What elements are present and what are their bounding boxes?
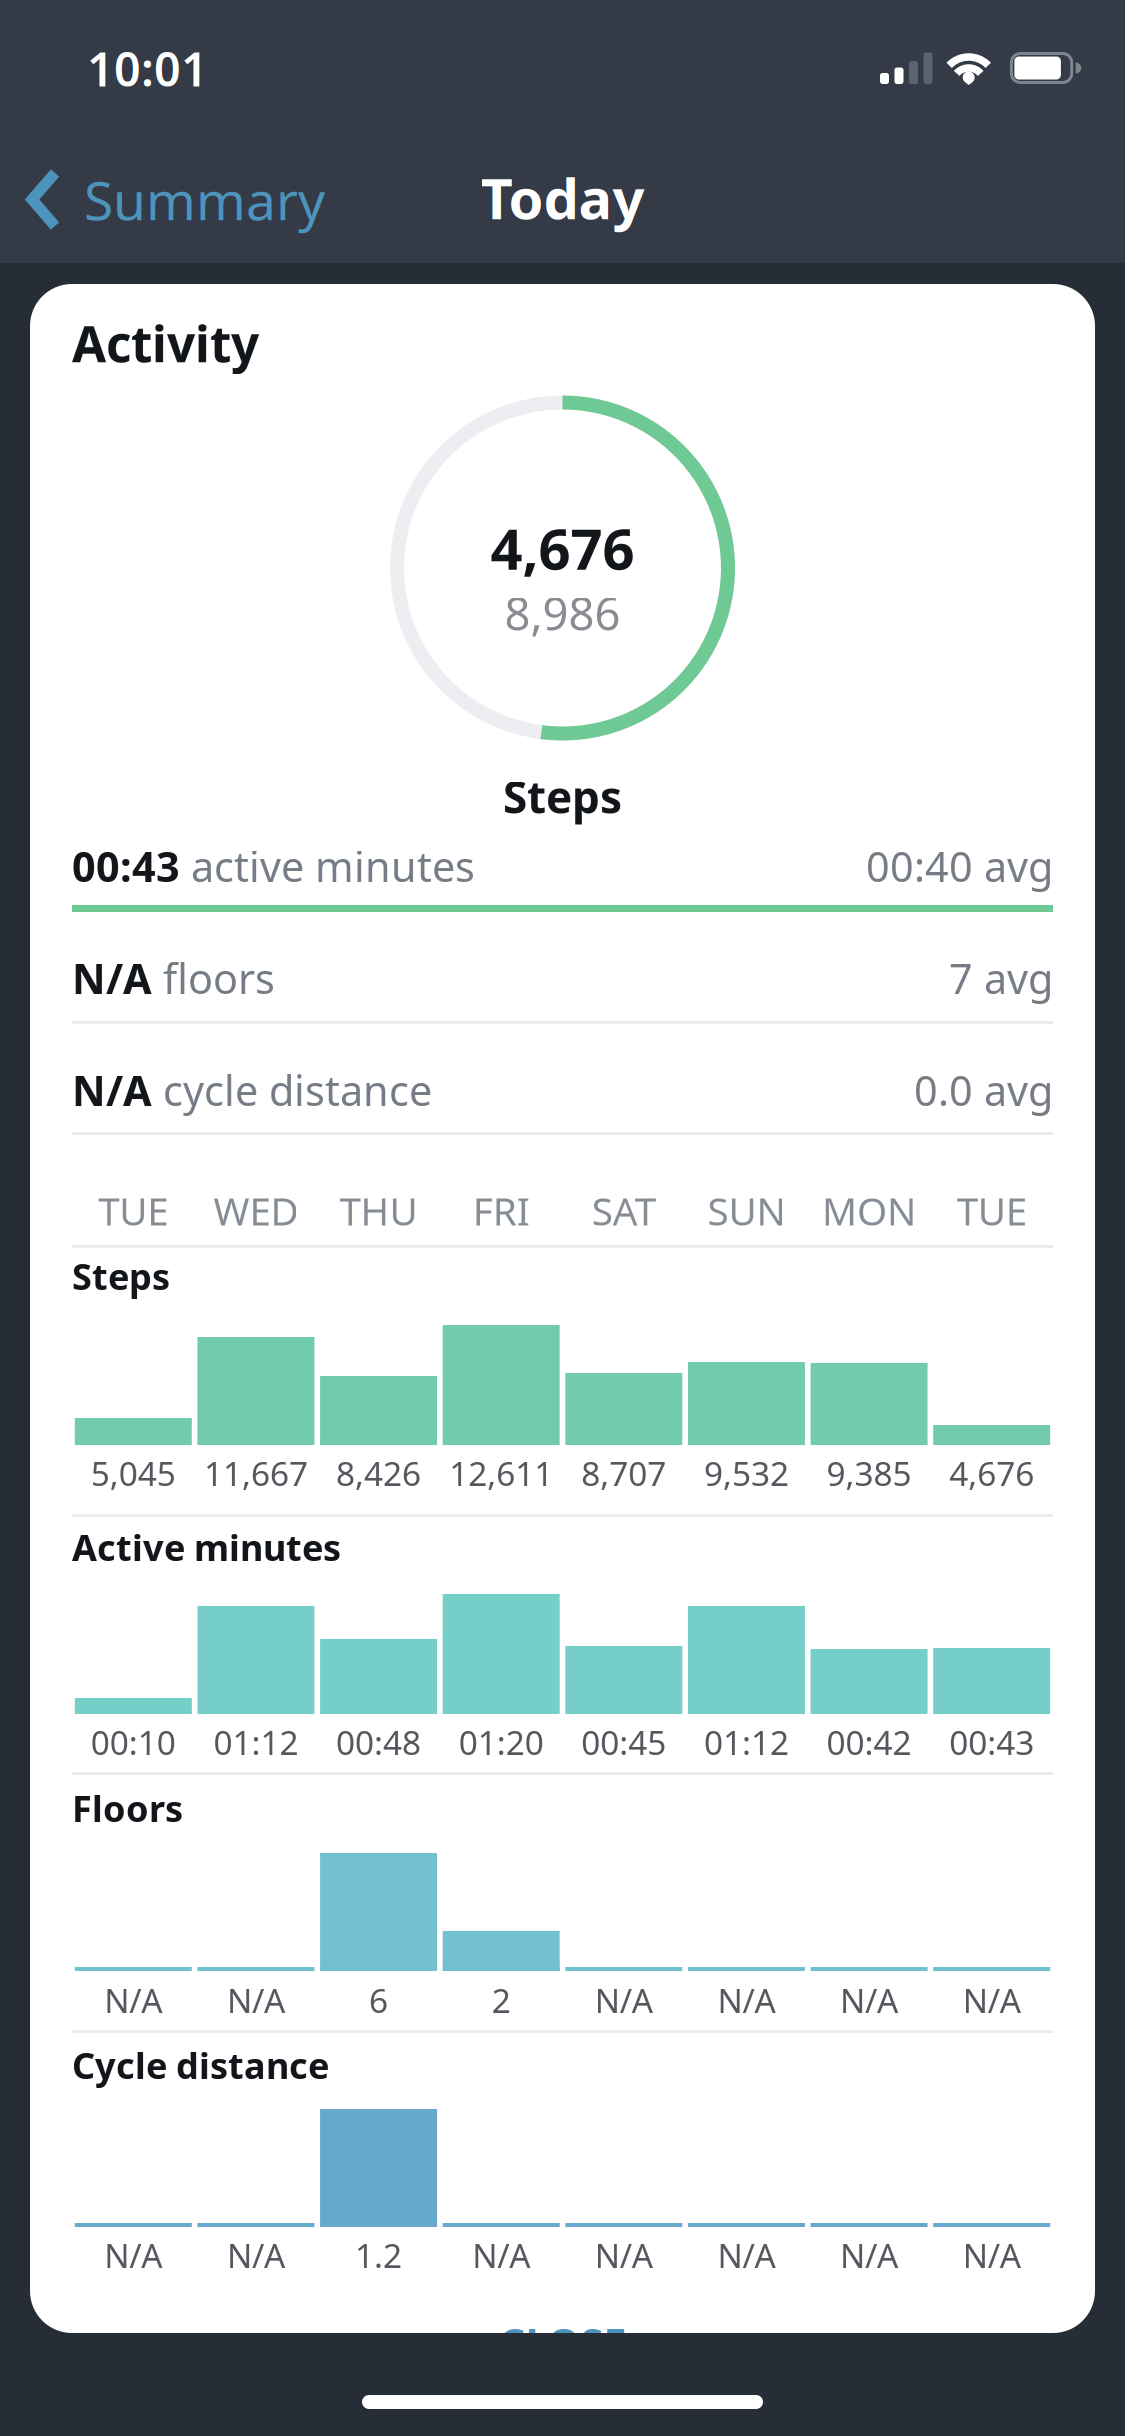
staticText: N/A xyxy=(104,2233,162,2277)
staticText: 01:20 xyxy=(459,1720,544,1764)
staticText: Steps xyxy=(503,767,622,826)
staticText: N/A xyxy=(72,1063,152,1117)
staticText: 8,707 xyxy=(581,1451,666,1495)
staticText: 8,986 xyxy=(504,583,620,643)
staticText: 8,426 xyxy=(336,1451,421,1495)
staticText: 00:45 xyxy=(581,1720,666,1764)
staticText: Cycle distance xyxy=(72,2041,329,2089)
staticText: 00:10 xyxy=(91,1720,176,1764)
staticText: N/A xyxy=(840,2233,898,2277)
staticText: Summary xyxy=(84,164,325,235)
staticText: Steps xyxy=(72,1252,170,1300)
staticText: 00:42 xyxy=(827,1720,912,1764)
staticText: 00:43 xyxy=(949,1720,1034,1764)
staticText: 11,667 xyxy=(204,1451,308,1495)
staticText: 4,676 xyxy=(490,511,634,585)
staticText: N/A xyxy=(840,1978,898,2022)
staticText: N/A xyxy=(963,1978,1021,2022)
staticText: cycle distance xyxy=(152,1063,432,1117)
staticText: 7 avg xyxy=(949,951,1053,1005)
staticText: 1.2 xyxy=(355,2233,402,2277)
staticText: CLOSE xyxy=(498,2316,626,2370)
staticText: THU xyxy=(340,1185,418,1236)
staticText: Today xyxy=(480,160,644,235)
button[interactable]: CLOSE xyxy=(72,2322,1053,2364)
staticText: Activity xyxy=(72,310,259,376)
staticText: 0.0 avg xyxy=(914,1063,1053,1117)
staticText: 2 xyxy=(492,1978,511,2022)
staticText: 5,045 xyxy=(91,1451,176,1495)
staticText: MON xyxy=(822,1185,916,1236)
staticText: N/A xyxy=(104,1978,162,2022)
staticText: N/A xyxy=(227,2233,285,2277)
staticText: Active minutes xyxy=(72,1523,341,1571)
staticText: 00:48 xyxy=(336,1720,421,1764)
staticText: N/A xyxy=(963,2233,1021,2277)
staticText: floors xyxy=(152,951,275,1005)
staticText: 00:43 xyxy=(72,839,180,893)
staticText: N/A xyxy=(227,1978,285,2022)
staticText: N/A xyxy=(595,1978,653,2022)
staticText: active minutes xyxy=(180,839,475,893)
staticText: 01:12 xyxy=(704,1720,789,1764)
staticText: N/A xyxy=(717,2233,775,2277)
staticText: N/A xyxy=(472,2233,530,2277)
staticText: TUE xyxy=(98,1185,168,1236)
staticText: 00:40 avg xyxy=(866,839,1053,893)
staticText: 9,532 xyxy=(704,1451,789,1495)
staticText: 12,611 xyxy=(449,1451,553,1495)
staticText: 6 xyxy=(369,1978,388,2022)
staticText: WED xyxy=(213,1185,298,1236)
staticText: 01:12 xyxy=(213,1720,298,1764)
staticText: Floors xyxy=(72,1784,183,1832)
staticText: SUN xyxy=(707,1185,785,1236)
staticText: N/A xyxy=(72,951,152,1005)
staticText: N/A xyxy=(595,2233,653,2277)
staticText: FRI xyxy=(473,1185,530,1236)
staticText: SAT xyxy=(592,1185,656,1236)
staticText: 10:01 xyxy=(87,37,208,99)
staticText: TUE xyxy=(957,1185,1027,1236)
button[interactable]: Back to Summary xyxy=(0,0,299,65)
staticText: 9,385 xyxy=(827,1451,912,1495)
staticText: 4,676 xyxy=(949,1451,1034,1495)
staticText: N/A xyxy=(717,1978,775,2022)
